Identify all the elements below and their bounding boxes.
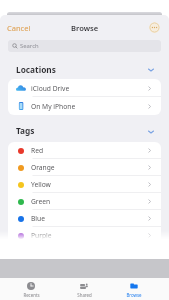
button[interactable]: More bbox=[149, 22, 160, 33]
staticText: Locations bbox=[16, 64, 56, 75]
staticText: On My iPhone bbox=[31, 102, 76, 111]
staticText: Search bbox=[20, 42, 39, 50]
staticText: Orange bbox=[31, 163, 55, 172]
button[interactable]: Recents bbox=[8, 278, 54, 298]
staticText: Browse bbox=[126, 292, 142, 298]
button[interactable]: Orange bbox=[8, 159, 161, 176]
button[interactable]: Browse bbox=[111, 278, 157, 298]
staticText: Recents bbox=[23, 292, 40, 298]
staticText: iCloud Drive bbox=[31, 84, 70, 93]
staticText: Blue bbox=[31, 214, 45, 223]
button[interactable]: Cancel bbox=[0, 19, 37, 37]
button[interactable]: Search bbox=[8, 40, 161, 52]
button[interactable]: Purple bbox=[8, 227, 161, 244]
button[interactable]: Yellow bbox=[8, 176, 161, 193]
button[interactable]: On My iPhone bbox=[8, 97, 161, 115]
button[interactable]: Red bbox=[8, 142, 161, 159]
button[interactable]: Blue bbox=[8, 210, 161, 227]
staticText: Yellow bbox=[31, 180, 51, 189]
button[interactable]: Green bbox=[8, 193, 161, 210]
staticText: Browse bbox=[71, 23, 99, 33]
button[interactable]: Collapse Locations bbox=[145, 64, 156, 75]
button[interactable]: Collapse Tags bbox=[145, 126, 156, 137]
staticText: Tags bbox=[16, 125, 35, 136]
staticText: Green bbox=[31, 197, 51, 206]
button[interactable]: Shared bbox=[61, 278, 107, 298]
button[interactable]: iCloud Drive bbox=[8, 79, 161, 97]
staticText: Shared bbox=[77, 292, 92, 298]
staticText: Purple bbox=[31, 231, 52, 240]
staticText: Red bbox=[31, 146, 44, 155]
